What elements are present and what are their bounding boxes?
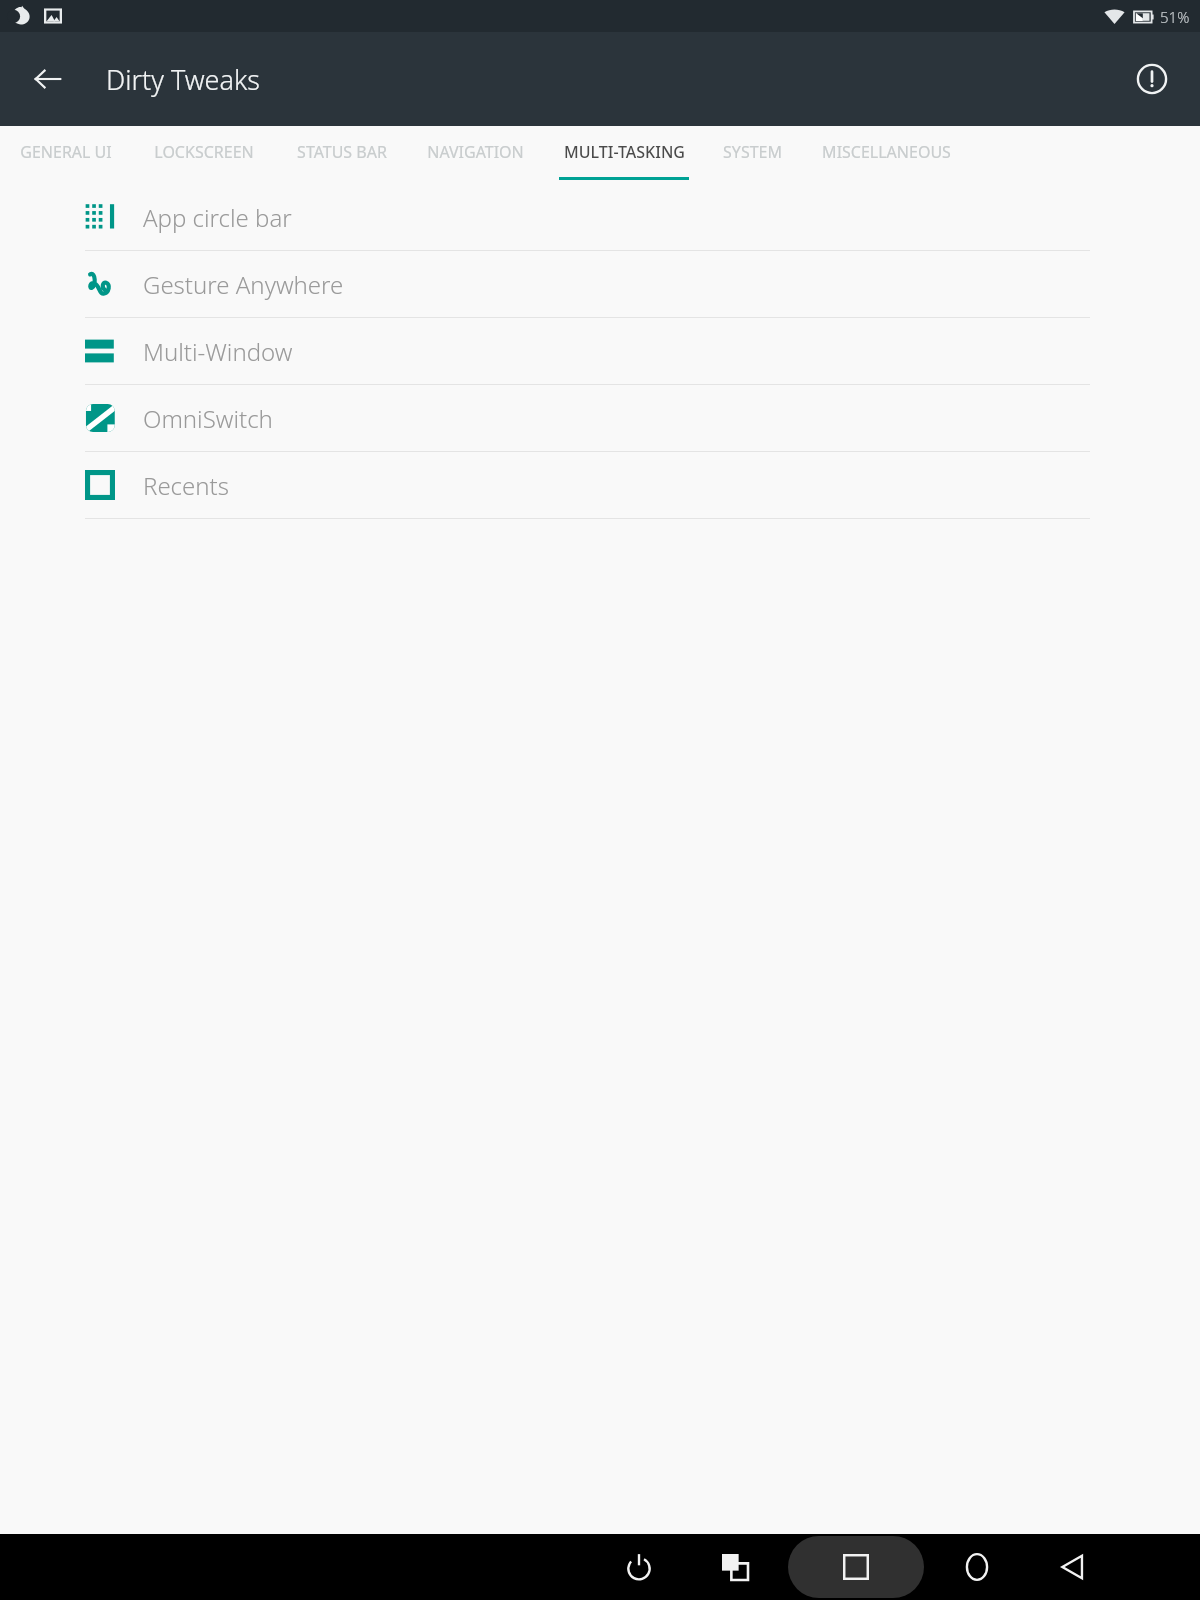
button[interactable]: STATUS BAR bbox=[278, 126, 406, 184]
button[interactable]: Recents bbox=[0, 452, 1200, 518]
staticText: NAVIGATION bbox=[427, 141, 524, 163]
staticText: OmniSwitch bbox=[143, 402, 273, 435]
button[interactable]: Gesture Anywhere bbox=[0, 251, 1200, 317]
button[interactable]: Multi-Window bbox=[0, 318, 1200, 384]
button[interactable]: SYSTEM bbox=[705, 126, 799, 184]
staticText: STATUS BAR bbox=[297, 141, 387, 163]
button[interactable]: Info bbox=[1126, 53, 1178, 105]
button[interactable]: Back bbox=[1042, 1536, 1104, 1598]
staticText: SYSTEM bbox=[723, 141, 782, 163]
button[interactable]: LOCKSCREEN bbox=[132, 126, 276, 184]
button[interactable]: GENERAL UI bbox=[4, 126, 128, 184]
button[interactable]: OmniSwitch bbox=[0, 385, 1200, 451]
staticText: MISCELLANEOUS bbox=[822, 141, 951, 163]
staticText: Gesture Anywhere bbox=[143, 268, 344, 301]
staticText: Recents bbox=[143, 469, 229, 502]
button[interactable]: Power bbox=[608, 1536, 670, 1598]
staticText: App circle bar bbox=[143, 201, 292, 234]
staticText: Multi-Window bbox=[143, 335, 293, 368]
button[interactable]: App circle bar bbox=[0, 184, 1200, 250]
staticText: MULTI-TASKING bbox=[564, 141, 685, 163]
staticText: 51% bbox=[1160, 7, 1190, 27]
button[interactable]: Split screen bbox=[704, 1536, 766, 1598]
button[interactable]: Recents bbox=[788, 1536, 924, 1598]
button[interactable]: Home bbox=[946, 1536, 1008, 1598]
staticText: LOCKSCREEN bbox=[154, 141, 254, 163]
button[interactable]: NAVIGATION bbox=[408, 126, 543, 184]
button[interactable]: MULTI-TASKING bbox=[545, 126, 703, 184]
button[interactable]: MISCELLANEOUS bbox=[801, 126, 972, 184]
button[interactable]: Back bbox=[22, 53, 74, 105]
staticText: Dirty Tweaks bbox=[106, 61, 260, 98]
staticText: GENERAL UI bbox=[20, 141, 112, 163]
